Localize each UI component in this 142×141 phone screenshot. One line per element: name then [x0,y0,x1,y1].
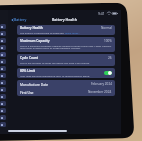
button[interactable]: Manufacture Date [17,80,115,88]
staticText: Normal [101,26,112,30]
button[interactable] [0,80,6,85]
button[interactable] [0,101,6,106]
button[interactable]: Maximum Capacity [17,37,115,52]
staticText: 26 [108,56,112,60]
button[interactable]: First Use [17,88,115,96]
staticText: Battery [14,17,27,22]
button[interactable] [0,31,6,36]
button[interactable] [0,52,6,57]
staticText: The battery is performing as expected. L… [20,31,80,34]
button[interactable]: Cycle Count [17,54,115,66]
button[interactable] [0,59,6,64]
button[interactable] [0,87,6,92]
button[interactable] [0,45,6,50]
button[interactable] [0,66,6,71]
staticText: First Use [20,90,34,94]
button[interactable] [0,108,6,113]
button[interactable] [0,24,6,29]
staticText: 9:41 [98,11,105,16]
other: Back [11,18,14,22]
button[interactable]: 80% Limit [17,68,115,78]
staticText: Battery Health [20,26,43,30]
button[interactable] [0,115,6,120]
staticText: This is the number of times the device h… [20,61,90,64]
staticText: 100% [104,39,112,43]
button[interactable]: Battery Health [17,25,115,35]
staticText: 80% Limit [20,69,36,73]
button[interactable] [0,73,6,78]
staticText: Your iPad will stop charging at 80% to r… [20,74,90,77]
button[interactable]: Back [11,17,27,22]
staticText: Maximum Capacity [20,39,50,43]
button[interactable] [0,94,6,99]
button[interactable] [0,38,6,43]
staticText: November 2024 [88,90,112,94]
staticText: Manufacture Date [20,82,49,86]
staticText: Battery Health [52,17,77,22]
staticText: February 2024 [91,82,112,86]
staticText: This is a measure of battery capacity re… [20,44,112,50]
staticText: Cycle Count [20,56,39,60]
button[interactable] [0,122,6,127]
